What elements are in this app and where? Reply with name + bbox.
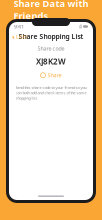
staticText: Share [47, 72, 61, 79]
staticText: Share Data with Friends [13, 0, 88, 22]
button[interactable]: ‹ [9, 32, 31, 41]
staticText: XJ8K2W [36, 56, 66, 67]
button[interactable]: Share [40, 71, 61, 80]
staticText: ıll [79, 23, 82, 30]
staticText: ‹ [12, 31, 15, 42]
staticText: Lists [16, 33, 28, 40]
staticText: 9:41 [14, 23, 24, 30]
staticText: Share Shopping List [18, 32, 83, 41]
staticText: Share code [37, 45, 64, 52]
staticText: Send this share code to your friend so y… [15, 85, 86, 101]
